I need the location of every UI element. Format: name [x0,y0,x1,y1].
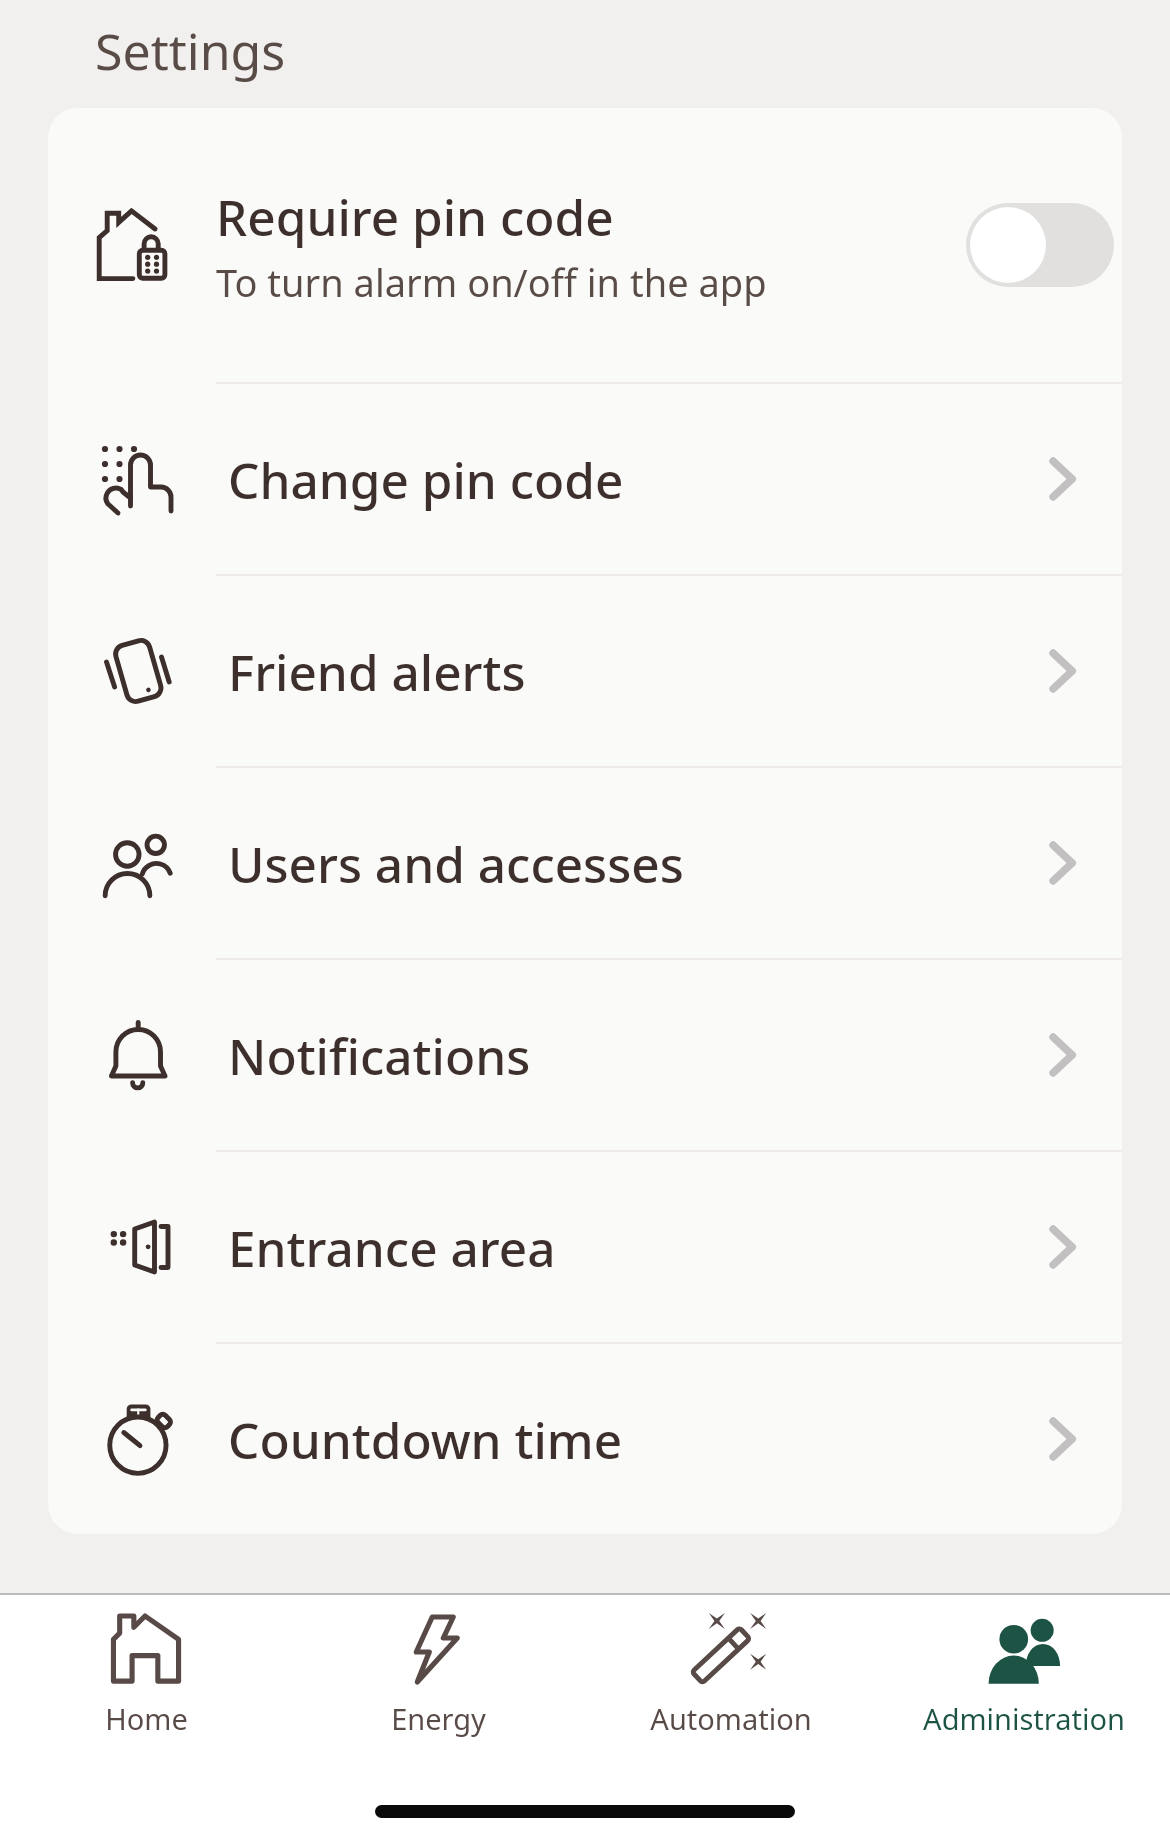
button[interactable]: Require pin code [48,108,1122,382]
button[interactable]: Countdown time [48,1344,1122,1534]
button[interactable]: Administration [877,1595,1170,1738]
button[interactable]: Automation [584,1595,877,1738]
staticText: Require pin code [216,183,614,250]
button[interactable]: Energy [292,1595,584,1738]
staticText: Settings [95,17,286,85]
staticText: To turn alarm on/off in the app [216,256,767,308]
button[interactable]: Require pin code toggle [966,203,1114,287]
staticText: Users and accesses [228,830,1002,897]
staticText: Home [105,1699,188,1738]
staticText: Entrance area [228,1214,1002,1281]
staticText: Automation [650,1699,812,1738]
button[interactable]: Entrance area [48,1152,1122,1342]
staticText: Countdown time [228,1406,1002,1473]
staticText: Change pin code [228,446,1002,513]
staticText: Energy [391,1699,486,1738]
button[interactable]: Change pin code [48,384,1122,574]
staticText: Notifications [228,1022,1002,1089]
staticText: Administration [923,1699,1125,1738]
button[interactable]: Notifications [48,960,1122,1150]
staticText: Friend alerts [228,638,1002,705]
button[interactable]: Users and accesses [48,768,1122,958]
button[interactable]: Home [0,1595,292,1738]
button[interactable]: Friend alerts [48,576,1122,766]
